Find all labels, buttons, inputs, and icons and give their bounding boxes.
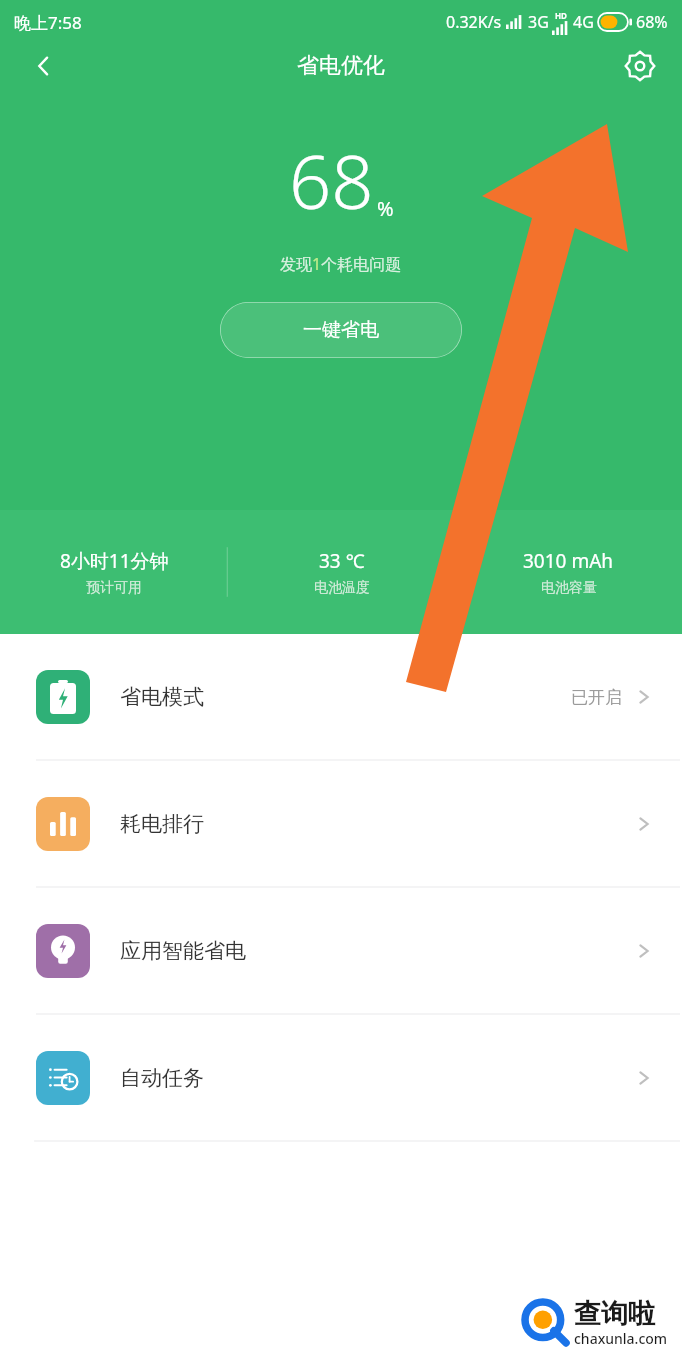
button[interactable]: 耗电排行	[0, 761, 682, 887]
staticText: 电池温度	[314, 579, 370, 597]
staticText: 4G	[573, 11, 594, 33]
staticText: 晚上7:58	[14, 11, 82, 34]
staticText: 3G	[528, 11, 549, 33]
staticText: 33 ℃	[319, 548, 365, 574]
button[interactable]: 自动任务	[0, 1015, 682, 1141]
staticText: 68	[289, 130, 374, 231]
button[interactable]: 一键省电	[220, 302, 462, 358]
staticText: 省电优化	[297, 52, 385, 80]
staticText: 电池容量	[541, 579, 597, 597]
staticText: 68%	[636, 11, 668, 33]
staticText: 0.32K/s	[446, 11, 502, 33]
staticText: 应用智能省电	[120, 938, 246, 964]
button[interactable]: 应用智能省电	[0, 888, 682, 1014]
button[interactable]: 省电模式	[0, 634, 682, 760]
staticText: 3010 mAh	[523, 548, 614, 574]
staticText: 8小时11分钟	[60, 548, 169, 574]
staticText: 已开启	[571, 687, 622, 708]
staticText: 省电模式	[120, 684, 204, 710]
button[interactable]: Back	[24, 46, 64, 86]
staticText: 一键省电	[303, 318, 379, 342]
staticText: chaxunla.com	[574, 1329, 668, 1348]
staticText: HD	[555, 10, 567, 21]
staticText: 查询啦	[574, 1297, 655, 1331]
staticText: 耗电排行	[120, 811, 204, 837]
staticText: 发现1个耗电问题	[280, 253, 402, 275]
button[interactable]: Settings	[620, 46, 660, 86]
staticText: %	[377, 195, 394, 222]
staticText: 自动任务	[120, 1065, 204, 1091]
staticText: 预计可用	[86, 579, 142, 597]
